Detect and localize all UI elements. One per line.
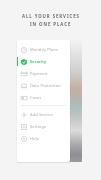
staticText: Help [30, 136, 40, 141]
button[interactable]: Payment [17, 67, 70, 79]
button[interactable]: Settings [17, 120, 70, 132]
staticText: ALL YOUR SERVICES [22, 13, 80, 19]
button[interactable]: Help [17, 132, 70, 144]
other: Data Protection [21, 83, 27, 89]
staticText: Settings [30, 124, 47, 129]
staticText: Add Service [30, 112, 53, 117]
button[interactable]: Security [17, 55, 70, 67]
staticText: IN ONE PLACE [30, 21, 72, 27]
button[interactable]: Cases [17, 91, 70, 103]
button[interactable]: Monthly Plans [17, 43, 70, 55]
other: Cases [21, 95, 27, 101]
other: Settings [21, 124, 27, 130]
other: Payment [21, 71, 27, 77]
staticText: Data Protection [30, 83, 61, 88]
staticText: Payment [30, 71, 48, 76]
staticText: Monthly Plans [30, 47, 58, 52]
staticText: Cases [30, 95, 42, 100]
other: Add Service [21, 112, 27, 118]
other: Help [21, 136, 27, 142]
other: Monthly Plans [21, 47, 27, 53]
button[interactable]: Data Protection [17, 79, 70, 91]
staticText: Security [30, 59, 47, 64]
other: Security [21, 59, 27, 65]
button[interactable]: Add Service [17, 108, 70, 120]
